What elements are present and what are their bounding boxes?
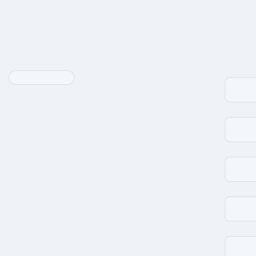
button[interactable]: Title xyxy=(9,71,74,85)
button[interactable]: Row 3 xyxy=(225,157,256,181)
button[interactable]: Row 5 xyxy=(225,236,256,256)
button[interactable]: Row 2 xyxy=(225,117,256,142)
